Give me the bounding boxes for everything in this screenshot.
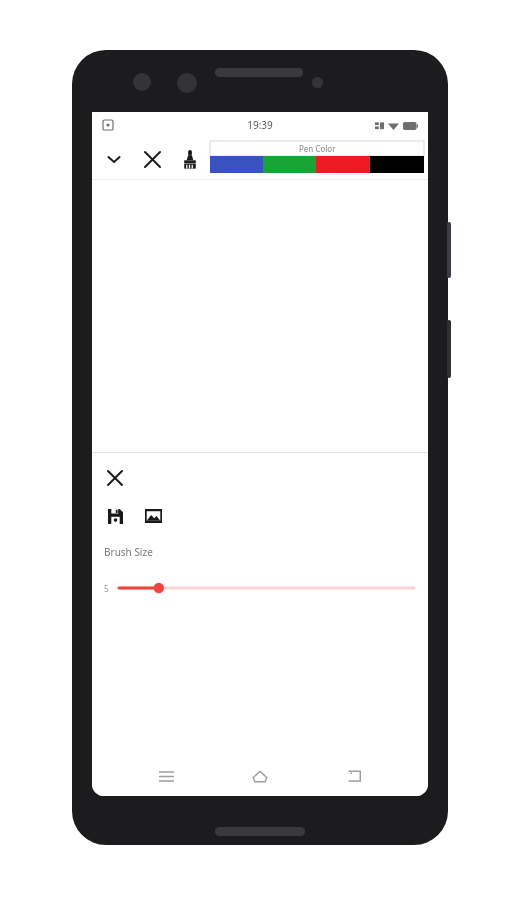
- staticText: Pen Color: [299, 143, 336, 154]
- button[interactable]: 5: [92, 577, 428, 599]
- button[interactable]: Close panel: [100, 463, 130, 493]
- staticText: 5: [104, 583, 109, 594]
- button[interactable]: Home: [240, 756, 280, 796]
- button[interactable]: Close: [136, 143, 168, 175]
- button[interactable]: Back: [334, 756, 374, 796]
- button[interactable]: Recent apps: [146, 756, 186, 796]
- button[interactable]: Save: [100, 501, 130, 531]
- staticText: 19:39: [247, 118, 273, 132]
- button[interactable]: Collapse: [98, 143, 130, 175]
- button[interactable]: Open image: [138, 501, 168, 531]
- button[interactable]: Brush: [174, 143, 206, 175]
- button[interactable]: Pen Color: [210, 141, 424, 177]
- staticText: Brush Size: [104, 545, 153, 559]
